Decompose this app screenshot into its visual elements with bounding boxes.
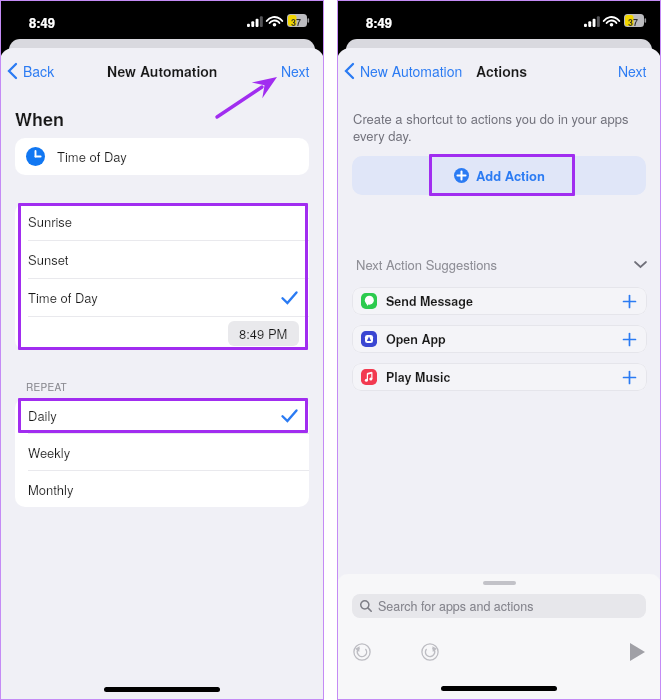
staticText: Open App [386,330,446,348]
staticText: 37 [628,16,639,29]
button[interactable]: Open App [352,325,647,353]
button[interactable]: Next [604,55,661,87]
staticText: 8:49 PM [239,324,288,343]
staticText: Search for apps and actions [378,597,534,615]
staticText: Play Music [386,368,451,386]
button[interactable]: Sunrise [15,203,309,240]
button[interactable]: Back [0,55,65,87]
button[interactable]: Search for apps and actions [352,594,646,618]
button[interactable]: Weekly [15,434,309,470]
staticText: Time of Day [28,288,98,307]
button[interactable]: Time of Day [15,279,309,316]
button[interactable]: Time of Day [15,138,309,175]
button[interactable]: Redo [421,643,439,661]
staticText: Sunset [28,250,69,269]
button[interactable]: 8:49 PM [228,321,299,346]
staticText: 8:49 [366,13,393,32]
staticText: Next [618,61,647,81]
button[interactable]: Daily [15,398,309,433]
other: Collapse suggestions [634,261,647,268]
button[interactable]: Sunset [15,241,309,278]
staticText: REPEAT [26,380,67,394]
button[interactable]: Run shortcut [630,643,645,661]
staticText: New Automation [360,61,463,81]
staticText: Next [281,61,310,81]
staticText: Actions [476,61,528,81]
staticText: 37 [291,16,302,29]
staticText: Weekly [28,443,71,462]
button[interactable]: Add Action [352,156,646,195]
staticText: Time of Day [57,147,127,166]
staticText: New Automation [107,61,218,81]
button[interactable]: Monthly [15,471,309,507]
staticText: Daily [28,406,57,425]
button[interactable]: New Automation [337,55,473,87]
button[interactable]: Send Message [352,287,647,315]
staticText: Monthly [28,480,74,499]
button[interactable]: Undo [353,643,371,661]
staticText: Send Message [386,292,473,310]
staticText: Sunrise [28,212,73,231]
button[interactable]: Play Music [352,363,647,391]
staticText: Add Action [476,166,545,185]
staticText: 8:49 [29,13,56,32]
staticText: Create a shortcut to actions you do in y… [353,109,631,145]
button[interactable]: Next Action Suggestions [337,253,661,275]
staticText: When [15,106,64,132]
button[interactable]: Next [267,55,324,87]
staticText: Back [23,61,55,81]
staticText: Next Action Suggestions [356,255,498,274]
